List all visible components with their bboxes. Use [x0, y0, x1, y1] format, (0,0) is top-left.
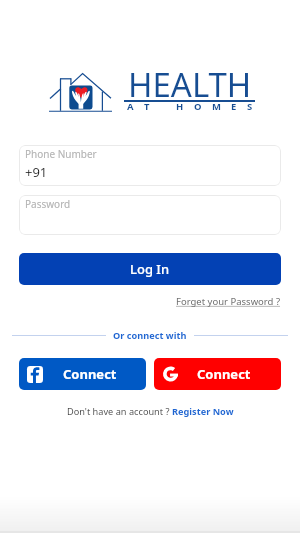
- staticText: M: [212, 100, 221, 113]
- other: Google: [163, 366, 178, 382]
- staticText: Don't have an account ?: [67, 405, 172, 418]
- staticText: +91: [25, 163, 48, 181]
- staticText: Connect: [197, 365, 251, 383]
- staticText: Log In: [130, 260, 170, 278]
- staticText: O: [194, 100, 202, 113]
- button[interactable]: Google: [154, 358, 281, 390]
- staticText: Or connect with: [113, 329, 187, 342]
- button[interactable]: Password: [19, 195, 281, 235]
- staticText: A: [127, 100, 134, 113]
- staticText: T: [144, 100, 150, 113]
- button[interactable]: Log In: [19, 253, 281, 285]
- staticText: Phone Number: [25, 147, 97, 161]
- staticText: HEALTH: [128, 62, 252, 107]
- staticText: Connect: [63, 365, 117, 383]
- staticText: Password: [25, 197, 71, 211]
- button[interactable]: Forget your Password ?: [176, 295, 281, 308]
- button[interactable]: Phone Number: [19, 145, 281, 186]
- staticText: S: [247, 100, 253, 113]
- other: Facebook: [27, 366, 43, 383]
- staticText: E: [231, 100, 237, 113]
- button[interactable]: Facebook: [19, 358, 146, 390]
- staticText: H: [176, 100, 184, 113]
- button[interactable]: Register Now: [172, 405, 234, 418]
